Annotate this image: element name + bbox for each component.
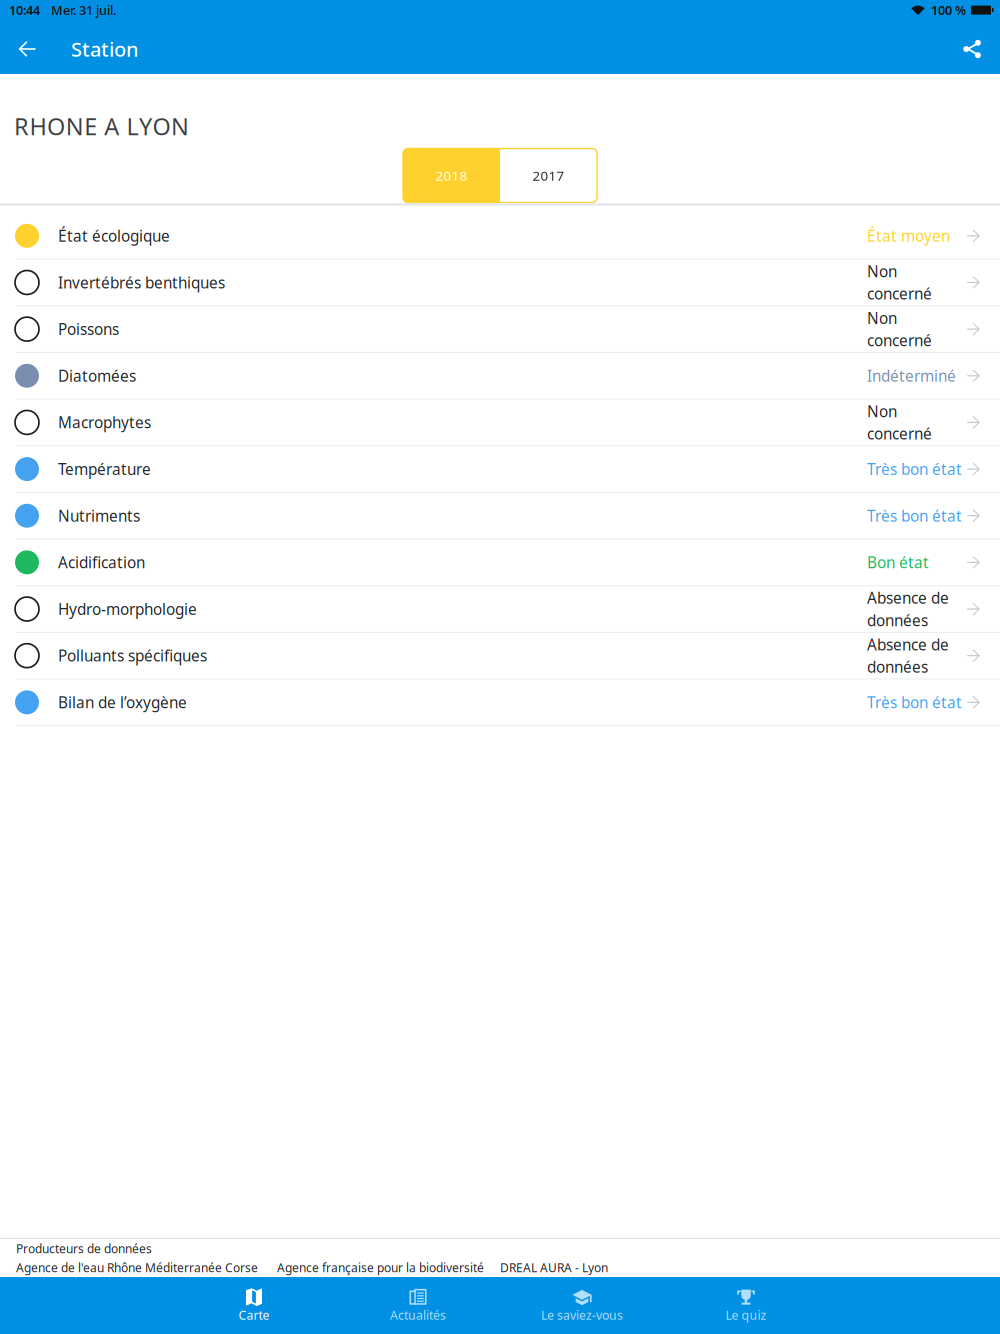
staticText: Bilan de l’oxygène xyxy=(58,692,187,712)
button[interactable]: Poissons xyxy=(0,306,1000,353)
staticText: concerné xyxy=(867,283,932,304)
button[interactable]: 2017 xyxy=(500,148,597,202)
staticText: 10:44 xyxy=(9,2,40,18)
staticText: Mer. 31 juil. xyxy=(51,2,116,18)
staticText: Station xyxy=(71,36,139,62)
staticText: État moyen xyxy=(867,226,950,246)
staticText: Très bon état xyxy=(867,505,962,526)
staticText: Le quiz xyxy=(725,1307,766,1323)
staticText: Hydro-morphologie xyxy=(58,599,197,619)
staticText: Poissons xyxy=(58,319,119,339)
staticText: Carte xyxy=(238,1307,269,1323)
staticText: DREAL AURA - Lyon xyxy=(500,1259,608,1275)
button[interactable]: Hydro-morphologie xyxy=(0,586,1000,633)
staticText: Bon état xyxy=(867,552,929,573)
staticText: Actualités xyxy=(390,1307,446,1323)
staticText: Le saviez-vous xyxy=(541,1307,623,1323)
staticText: 2017 xyxy=(532,167,564,184)
button[interactable]: Nutriments xyxy=(0,493,1000,539)
button[interactable]: Acidification xyxy=(0,539,1000,586)
staticText: 2018 xyxy=(435,167,467,184)
staticText: Agence de l'eau Rhône Méditerranée Corse xyxy=(16,1259,258,1275)
staticText: Polluants spécifiques xyxy=(58,645,207,666)
button[interactable]: Macrophytes xyxy=(0,400,1000,446)
staticText: Nutriments xyxy=(58,505,140,526)
staticText: Invertébrés benthiques xyxy=(58,272,225,293)
button[interactable]: Température xyxy=(0,446,1000,493)
button[interactable]: 2018 xyxy=(403,148,500,202)
button[interactable]: Share xyxy=(944,24,1000,74)
staticText: 100 % xyxy=(931,2,966,18)
button[interactable]: Invertébrés benthiques xyxy=(0,260,1000,306)
staticText: concerné xyxy=(867,330,932,350)
staticText: Indéterminé xyxy=(867,366,956,386)
staticText: Diatomées xyxy=(58,366,136,386)
staticText: Très bon état xyxy=(867,459,962,479)
staticText: État écologique xyxy=(58,226,170,246)
button[interactable]: Actualités xyxy=(336,1277,500,1334)
staticText: Non xyxy=(867,401,897,421)
button[interactable]: Diatomées xyxy=(0,353,1000,399)
staticText: Non xyxy=(867,308,897,328)
staticText: Acidification xyxy=(58,552,145,573)
staticText: Macrophytes xyxy=(58,412,151,433)
staticText: concerné xyxy=(867,423,932,444)
staticText: RHONE A LYON xyxy=(14,110,189,142)
staticText: Très bon état xyxy=(867,692,962,712)
button[interactable]: Le saviez-vous xyxy=(500,1277,664,1334)
staticText: Agence française pour la biodiversité xyxy=(277,1259,484,1275)
staticText: Producteurs de données xyxy=(16,1240,152,1256)
staticText: Température xyxy=(58,459,151,479)
button[interactable]: Bilan de l’oxygène xyxy=(0,679,1000,726)
button[interactable]: Carte xyxy=(172,1277,336,1334)
staticText: Non xyxy=(867,261,897,281)
button[interactable]: Polluants spécifiques xyxy=(0,633,1000,679)
staticText: Absence de xyxy=(867,588,949,608)
button[interactable]: État écologique xyxy=(0,213,1000,260)
staticText: Absence de xyxy=(867,634,949,655)
staticText: données xyxy=(867,610,928,630)
staticText: données xyxy=(867,657,928,677)
button[interactable]: Le quiz xyxy=(664,1277,828,1334)
button[interactable]: Back xyxy=(0,24,54,74)
